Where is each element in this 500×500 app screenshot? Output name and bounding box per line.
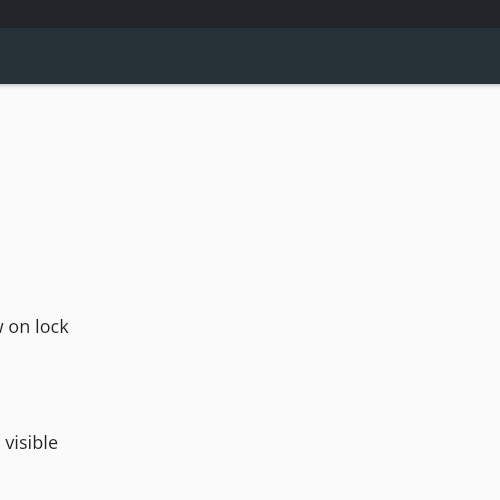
button[interactable]: Show on lock (0, 298, 442, 354)
staticText: Keep visible (0, 430, 59, 455)
staticText: Show on lock (0, 314, 69, 339)
button[interactable]: Keep visible (0, 414, 442, 470)
